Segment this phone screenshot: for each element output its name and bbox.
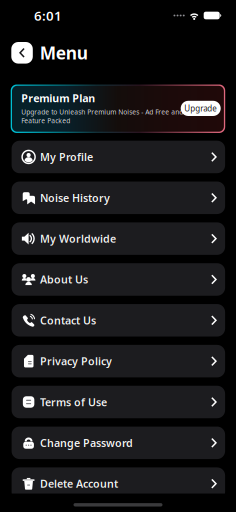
- staticText: Upgrade to Unleash Premium Noises - Ad F…: [21, 107, 183, 116]
- button[interactable]: Privacy Policy: [12, 345, 225, 377]
- staticText: About Us: [40, 272, 88, 287]
- staticText: Change Password: [40, 436, 133, 450]
- button[interactable]: Premium Plan: [11, 84, 225, 133]
- button[interactable]: Delete Account: [12, 467, 225, 500]
- staticText: Terms of Use: [40, 395, 107, 409]
- staticText: Delete Account: [40, 477, 118, 491]
- button[interactable]: My Profile: [12, 141, 225, 173]
- staticText: Feature Packed: [21, 116, 70, 125]
- button[interactable]: Back: [11, 42, 33, 64]
- staticText: Noise History: [40, 191, 110, 205]
- button[interactable]: About Us: [12, 263, 225, 296]
- button[interactable]: My Worldwide: [12, 222, 225, 255]
- button[interactable]: Change Password: [12, 427, 225, 459]
- staticText: Menu: [40, 41, 88, 64]
- button[interactable]: Terms of Use: [12, 386, 225, 418]
- staticText: Premium Plan: [21, 91, 95, 105]
- staticText: Upgrade: [184, 103, 217, 114]
- staticText: Contact Us: [40, 313, 96, 327]
- staticText: My Profile: [40, 150, 93, 164]
- staticText: My Worldwide: [40, 231, 116, 246]
- staticText: Privacy Policy: [40, 354, 112, 368]
- button[interactable]: Noise History: [12, 181, 225, 214]
- button[interactable]: Contact Us: [12, 304, 225, 337]
- staticText: 6:01: [34, 7, 62, 24]
